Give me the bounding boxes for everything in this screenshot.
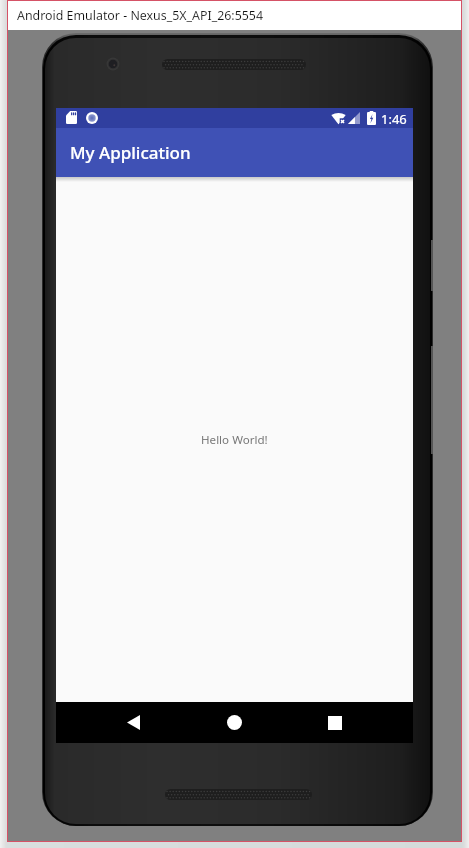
button[interactable]: Home	[200, 702, 268, 743]
staticText: My Application	[70, 141, 191, 164]
button[interactable]: Recents	[301, 702, 369, 743]
staticText: 1:46	[381, 110, 407, 128]
staticText: Android Emulator - Nexus_5X_API_26:5554	[17, 7, 264, 24]
button[interactable]: Back	[100, 702, 167, 743]
staticText: Hello World!	[201, 432, 268, 448]
